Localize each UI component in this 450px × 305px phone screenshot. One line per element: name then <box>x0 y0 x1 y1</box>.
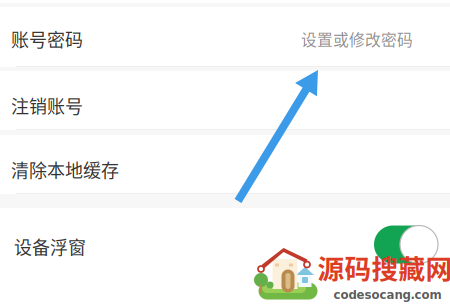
staticText: 设置或修改密码 <box>301 28 413 50</box>
staticText: codesocang.com <box>333 288 441 302</box>
staticText: 源码搜藏网 <box>317 248 450 286</box>
button[interactable]: 账号密码 <box>0 0 450 67</box>
staticText: 账号密码 <box>11 26 83 52</box>
button[interactable]: 清除本地缓存 <box>0 135 450 194</box>
button[interactable]: 注销账号 <box>0 71 450 130</box>
button[interactable]: 设备浮窗 <box>0 208 450 305</box>
staticText: 清除本地缓存 <box>11 156 119 183</box>
staticText: 注销账号 <box>11 92 83 119</box>
staticText: 设备浮窗 <box>14 233 86 260</box>
